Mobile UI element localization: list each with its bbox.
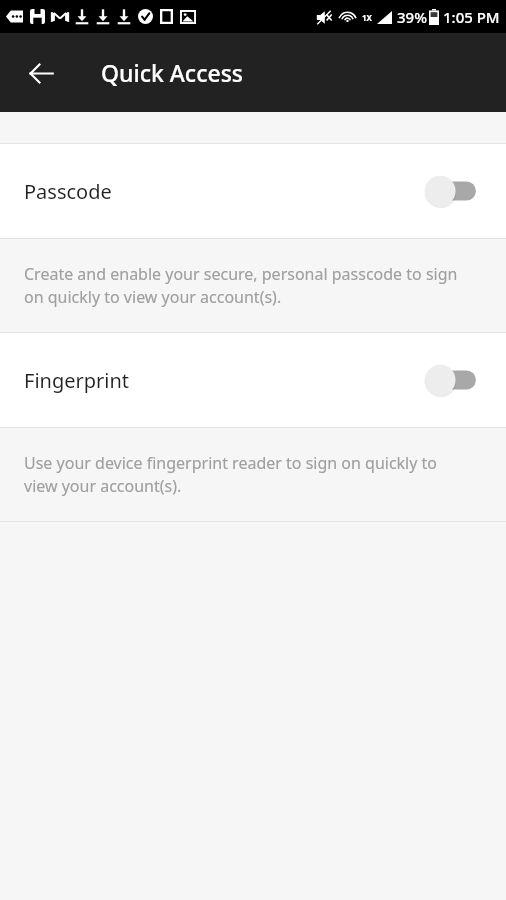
staticText: 1X — [362, 12, 372, 23]
staticText: Use your device fingerprint reader to si… — [24, 452, 470, 497]
staticText: 39% — [397, 7, 427, 27]
staticText: Passcode — [24, 178, 112, 205]
staticText: Create and enable your secure, personal … — [24, 263, 470, 308]
staticText: 1:05 PM — [443, 7, 500, 27]
staticText: Fingerprint — [24, 367, 130, 394]
button[interactable]: Passcode — [0, 144, 506, 238]
button[interactable]: Back — [17, 49, 65, 97]
button[interactable]: Toggle — [424, 174, 476, 208]
button[interactable]: Toggle — [424, 363, 476, 397]
button[interactable]: Fingerprint — [0, 333, 506, 427]
staticText: Quick Access — [101, 57, 244, 88]
